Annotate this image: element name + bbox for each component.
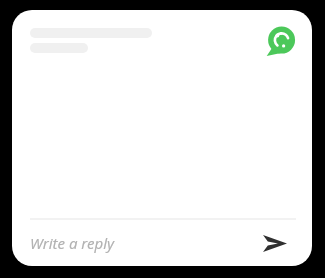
- button[interactable]: WhatsApp: [265, 26, 296, 57]
- button[interactable]: Send: [252, 220, 298, 266]
- staticText: Write a reply: [30, 233, 115, 253]
- button[interactable]: Write a reply: [12, 220, 252, 266]
